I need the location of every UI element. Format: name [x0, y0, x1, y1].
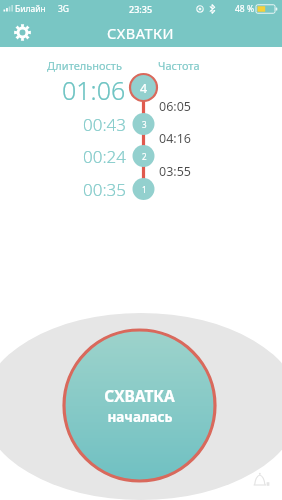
staticText: Длительность — [47, 58, 122, 73]
button[interactable]: Settings — [8, 18, 37, 47]
staticText: 03:55 — [159, 163, 191, 180]
staticText: СХВАТКИ — [107, 23, 175, 43]
staticText: Билайн — [15, 3, 46, 15]
staticText: Частота — [158, 58, 200, 73]
staticText: 4 — [140, 80, 148, 97]
staticText: 00:35 — [83, 178, 126, 200]
staticText: 3 — [142, 119, 147, 130]
staticText: 2 — [142, 151, 147, 162]
staticText: СХВАТКА — [104, 385, 175, 406]
button[interactable]: СХВАТКА — [62, 328, 217, 483]
staticText: 04:16 — [159, 130, 191, 147]
staticText: 1 — [142, 184, 147, 195]
staticText: 06:05 — [159, 98, 191, 115]
staticText: началась — [107, 408, 173, 426]
staticText: 00:43 — [83, 113, 126, 135]
staticText: 00:24 — [83, 145, 126, 167]
button[interactable]: Notifications — [248, 468, 274, 494]
staticText: 23:35 — [129, 3, 153, 15]
staticText: 3G — [58, 3, 70, 15]
staticText: 01:06 — [62, 73, 126, 103]
staticText: 48 % — [235, 3, 254, 15]
